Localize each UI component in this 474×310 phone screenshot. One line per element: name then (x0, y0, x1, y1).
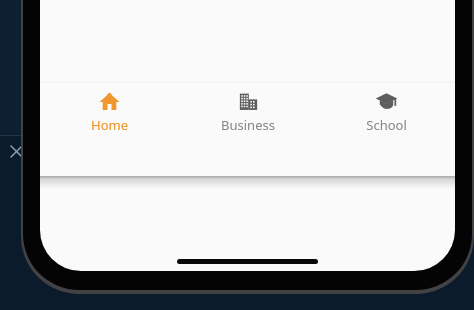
button[interactable]: Business (179, 83, 317, 176)
button[interactable]: School (317, 83, 455, 176)
button[interactable]: Home (40, 83, 179, 176)
staticText: School (366, 116, 407, 134)
button[interactable]: Close (1, 136, 31, 166)
staticText: Home (91, 116, 128, 134)
staticText: Business (221, 116, 275, 134)
